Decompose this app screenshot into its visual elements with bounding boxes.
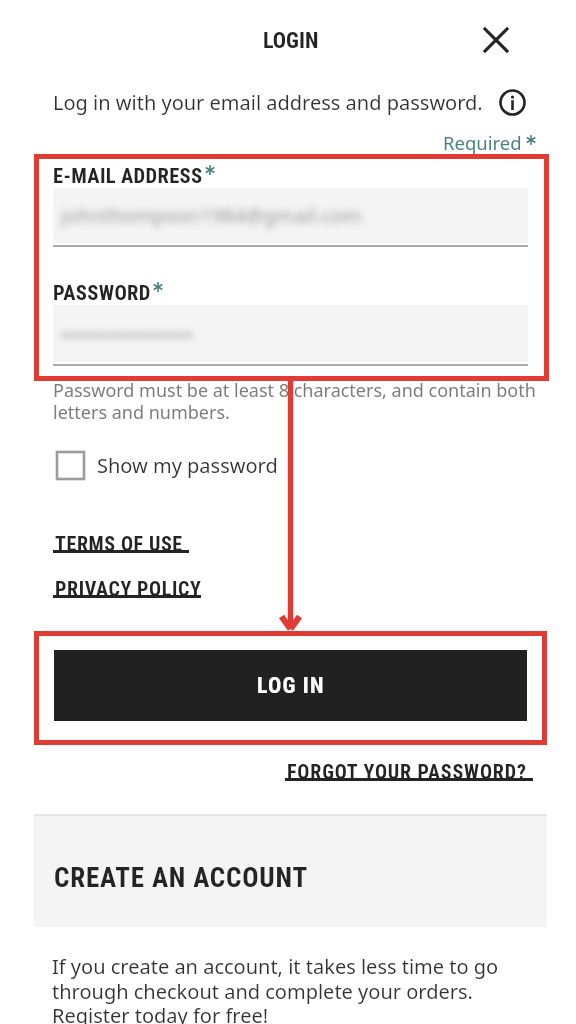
staticText: LOG IN — [257, 673, 325, 699]
staticText: CREATE AN ACCOUNT — [54, 862, 308, 894]
button[interactable]: TERMS OF USE — [55, 532, 191, 558]
staticText: PRIVACY POLICY — [55, 577, 202, 600]
button[interactable]: Close — [471, 15, 520, 64]
staticText: Required — [443, 130, 522, 155]
staticText: johnthompson1984@gmail.com — [61, 202, 362, 229]
staticText: Password must be at least 8 characters, … — [53, 378, 536, 425]
staticText: •••••••••••••••• — [61, 319, 194, 349]
button[interactable]: LOG IN — [54, 650, 527, 721]
button[interactable]: Information — [492, 82, 532, 122]
staticText: PASSWORD — [53, 281, 151, 305]
staticText: TERMS OF USE — [55, 532, 183, 555]
button[interactable]: Show my password — [57, 441, 278, 489]
staticText: E-MAIL ADDRESS — [53, 164, 203, 188]
button[interactable]: FORGOT YOUR PASSWORD? — [287, 760, 535, 786]
staticText: Show my password — [97, 452, 278, 479]
staticText: If you create an account, it takes less … — [52, 953, 499, 1024]
button[interactable]: PRIVACY POLICY — [55, 577, 203, 603]
button[interactable]: CREATE AN ACCOUNT — [34, 814, 547, 927]
staticText: LOGIN — [263, 28, 319, 54]
staticText: FORGOT YOUR PASSWORD? — [287, 760, 527, 783]
staticText: Log in with your email address and passw… — [53, 89, 483, 116]
